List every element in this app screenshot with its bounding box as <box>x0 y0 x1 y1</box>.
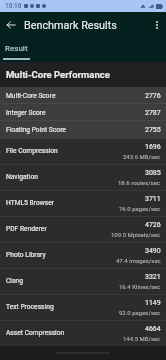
button[interactable]: PDF Renderer <box>0 216 166 242</box>
staticText: 18.6 routes/sec <box>118 179 161 186</box>
staticText: Benchmark Results <box>24 19 117 32</box>
staticText: 76.0 pages/sec <box>119 205 161 212</box>
staticText: File Compression <box>6 147 58 155</box>
button[interactable]: Integer Score <box>0 104 166 121</box>
staticText: 4726 <box>145 221 161 229</box>
button[interactable]: Photo Library <box>0 242 166 268</box>
button[interactable]: Navigate up <box>0 14 22 36</box>
button[interactable]: HTML5 Browser <box>0 190 166 216</box>
staticText: 3085 <box>145 169 161 177</box>
staticText: Text Processing <box>6 303 54 311</box>
staticText: Clang <box>6 277 24 285</box>
staticText: 10:16 <box>5 2 22 10</box>
staticText: 109.0 Mpixels/sec <box>111 231 161 238</box>
staticText: Integer Score <box>6 109 46 117</box>
staticText: Floating Point Score <box>6 126 66 134</box>
staticText: 3490 <box>145 247 161 255</box>
button[interactable]: Text Processing <box>0 294 166 320</box>
staticText: 47.4 images/sec <box>116 257 161 264</box>
staticText: 4664 <box>145 325 161 333</box>
staticText: Navigation <box>6 173 38 181</box>
staticText: 1696 <box>145 143 161 151</box>
staticText: Result <box>5 44 28 53</box>
staticText: HTML5 Browser <box>6 199 54 207</box>
staticText: Multi-Core Performance <box>6 69 110 80</box>
staticText: 144.5 MB/sec <box>123 335 161 342</box>
staticText: 1149 <box>145 299 161 307</box>
staticText: 3321 <box>145 273 161 281</box>
staticText: 2787 <box>145 109 161 117</box>
button[interactable]: Clang <box>0 268 166 294</box>
staticText: 2755 <box>145 126 161 134</box>
staticText: 16.4 Klines/sec <box>119 283 161 290</box>
staticText: Asset Compression <box>6 329 65 337</box>
staticText: 243.6 MB/sec <box>123 153 161 160</box>
button[interactable]: Result <box>0 38 166 62</box>
staticText: 3711 <box>145 195 161 203</box>
staticText: 92.0 pages/sec <box>119 309 161 316</box>
staticText: PDF Renderer <box>6 225 47 233</box>
button[interactable]: Multi-Core Score <box>0 87 166 104</box>
button[interactable]: File Compression <box>0 138 166 164</box>
staticText: Photo Library <box>6 251 46 259</box>
staticText: Multi-Core Score <box>6 92 56 100</box>
button[interactable]: Asset Compression <box>0 320 166 346</box>
button[interactable]: More options <box>148 14 166 36</box>
button[interactable]: Floating Point Score <box>0 121 166 138</box>
staticText: 2776 <box>145 92 161 100</box>
button[interactable]: Navigation <box>0 164 166 190</box>
